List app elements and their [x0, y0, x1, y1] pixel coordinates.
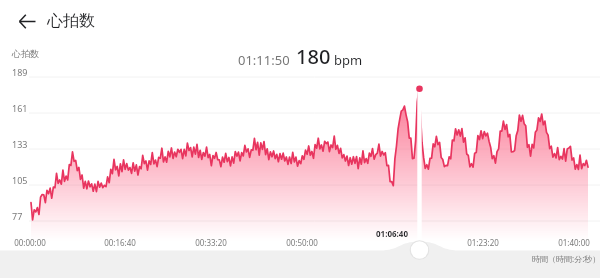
staticText: 77 — [12, 210, 23, 222]
staticText: 00:00:00 — [0, 237, 60, 248]
staticText: 01:23:20 — [453, 237, 513, 248]
staticText: 133 — [12, 138, 28, 150]
staticText: 00:50:00 — [272, 237, 332, 248]
staticText: 180 — [296, 43, 331, 70]
staticText: 00:16:40 — [90, 237, 150, 248]
staticText: 00:33:20 — [181, 237, 241, 248]
button[interactable]: Back — [13, 7, 41, 35]
staticText: 01:40:00 — [544, 237, 600, 248]
staticText: 105 — [12, 174, 28, 186]
staticText: 189 — [12, 66, 28, 78]
staticText: 01:11:50 — [238, 51, 290, 69]
staticText: bpm — [334, 51, 363, 69]
staticText: 161 — [12, 102, 28, 114]
staticText: 01:06:40 — [362, 228, 422, 239]
staticText: 心拍数 — [47, 11, 95, 31]
staticText: 時間（時間:分:秒） — [532, 253, 600, 264]
staticText: 心拍数 — [12, 48, 39, 59]
